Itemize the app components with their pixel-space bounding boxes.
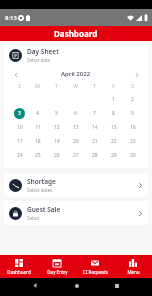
staticText: 29 [111, 152, 117, 159]
button[interactable]: 21 [89, 136, 100, 147]
staticText: S [18, 83, 21, 90]
staticText: Shortage [27, 177, 56, 186]
staticText: 13 [73, 124, 79, 131]
button[interactable]: 1 [108, 94, 119, 105]
button[interactable]: 20 [70, 136, 81, 147]
button[interactable]: Menu [114, 255, 152, 278]
staticText: 7 [93, 110, 96, 117]
button[interactable]: 24 [14, 150, 25, 161]
staticText: Select [27, 215, 40, 221]
button[interactable]: 9 [127, 108, 138, 119]
button[interactable]: 4 [32, 108, 43, 119]
staticText: 28 [92, 152, 98, 159]
staticText: Day Sheet [27, 47, 59, 56]
button[interactable]: Day Entry [38, 255, 76, 278]
button[interactable]: 2 [127, 94, 138, 105]
button[interactable]: 26 [51, 150, 62, 161]
staticText: Dashboard [54, 28, 98, 39]
button[interactable]: Guest Sale [4, 201, 148, 225]
staticText: 8:15 [5, 14, 17, 22]
staticText: Menu [127, 269, 140, 275]
button[interactable]: 8 [108, 108, 119, 119]
staticText: 24 [17, 152, 23, 159]
staticText: T [55, 83, 58, 90]
staticText: 19 [54, 138, 60, 145]
staticText: Select dates [27, 187, 53, 193]
staticText: 20 [73, 138, 79, 145]
button[interactable]: 14 [89, 122, 100, 133]
staticText: 26 [54, 152, 60, 159]
staticText: T [93, 83, 96, 90]
staticText: 23 [130, 138, 136, 145]
staticText: April 2022 [61, 70, 91, 78]
button[interactable]: 13 [70, 122, 81, 133]
button[interactable]: 25 [32, 150, 43, 161]
staticText: M [35, 83, 40, 90]
button[interactable]: 19 [51, 136, 62, 147]
button[interactable]: 15 [108, 122, 119, 133]
button[interactable]: 7 [89, 108, 100, 119]
staticText: 3 [18, 110, 21, 117]
staticText: Dashboard [7, 269, 31, 275]
staticText: 5 [55, 110, 58, 117]
staticText: 1 [112, 96, 115, 103]
button[interactable]: 3 [14, 108, 25, 119]
button[interactable]: Dashboard [0, 255, 38, 278]
staticText: 6 [74, 110, 77, 117]
button[interactable]: 12 [51, 122, 62, 133]
button[interactable]: 27 [70, 150, 81, 161]
staticText: CI Requests [83, 269, 108, 275]
button[interactable]: Day Sheet [4, 43, 148, 67]
staticText: 14 [92, 124, 98, 131]
staticText: 12 [54, 124, 60, 131]
button[interactable]: 18 [32, 136, 43, 147]
button[interactable]: Back [31, 281, 40, 290]
staticText: 22 [111, 138, 117, 145]
button[interactable]: 16 [127, 122, 138, 133]
staticText: 8 [112, 110, 115, 117]
button[interactable]: 28 [89, 150, 100, 161]
button[interactable]: 17 [14, 136, 25, 147]
staticText: 17 [17, 138, 23, 145]
staticText: 21 [92, 138, 98, 145]
button[interactable]: 5 [51, 108, 62, 119]
staticText: 4 [36, 110, 39, 117]
staticText: 11 [35, 124, 41, 131]
staticText: Guest Sale [27, 205, 61, 214]
button[interactable]: Next month [131, 69, 142, 80]
button[interactable]: 30 [127, 150, 138, 161]
button[interactable]: Previous month [10, 69, 21, 80]
button[interactable]: 10 [14, 122, 25, 133]
button[interactable]: 22 [108, 136, 119, 147]
staticText: 10 [17, 124, 23, 131]
staticText: 16 [130, 124, 136, 131]
staticText: 30 [130, 152, 136, 159]
staticText: Day Entry [47, 269, 68, 275]
button[interactable]: Home [72, 281, 81, 290]
staticText: 9 [131, 110, 134, 117]
staticText: S [131, 83, 134, 90]
button[interactable]: CI Requests [76, 255, 114, 278]
staticText: 25 [35, 152, 41, 159]
staticText: 27 [73, 152, 79, 159]
staticText: 2 [131, 96, 134, 103]
staticText: F [112, 83, 115, 90]
staticText: 18 [35, 138, 41, 145]
button[interactable]: 6 [70, 108, 81, 119]
staticText: W [73, 83, 78, 90]
button[interactable]: 23 [127, 136, 138, 147]
button[interactable]: Recents [112, 281, 121, 290]
button[interactable]: 29 [108, 150, 119, 161]
button[interactable]: 11 [32, 122, 43, 133]
staticText: 15 [111, 124, 117, 131]
staticText: Select date [27, 57, 51, 63]
button[interactable]: Shortage [4, 173, 148, 197]
